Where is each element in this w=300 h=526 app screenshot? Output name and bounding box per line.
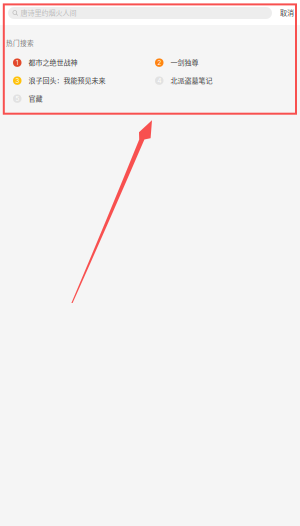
staticText: 4: [157, 77, 161, 85]
staticText: 取消: [280, 7, 294, 18]
staticText: 热门搜索: [6, 38, 34, 48]
staticText: 都市之绝世战神: [28, 57, 77, 67]
staticText: 官藏: [28, 93, 42, 103]
button[interactable]: 1: [13, 54, 155, 72]
staticText: 5: [15, 95, 19, 103]
staticText: 浪子回头：我能预见未来: [28, 75, 105, 85]
button[interactable]: 5: [13, 90, 155, 108]
button[interactable]: 4: [155, 72, 300, 90]
staticText: 3: [15, 77, 19, 85]
button[interactable]: 取消: [272, 5, 300, 21]
staticText: 1: [16, 59, 19, 67]
staticText: 北派盗墓笔记: [170, 75, 212, 85]
staticText: 2: [157, 59, 161, 67]
staticText: 唐诗里约烟火人间: [21, 7, 77, 18]
button[interactable]: 3: [13, 72, 155, 90]
staticText: 一剑独尊: [170, 57, 198, 67]
button[interactable]: 2: [155, 54, 300, 72]
